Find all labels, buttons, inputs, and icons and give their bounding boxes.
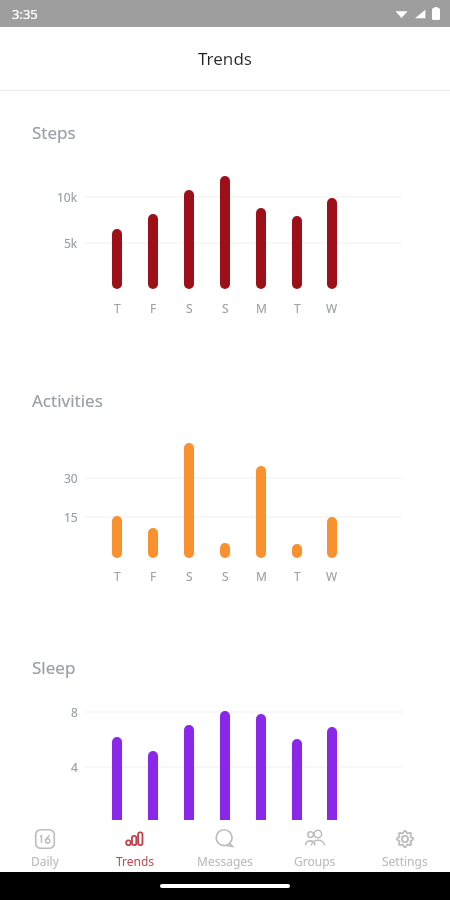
staticText: 5k xyxy=(64,235,78,251)
button[interactable]: Groups xyxy=(270,824,360,869)
staticText: Steps xyxy=(32,121,76,144)
staticText: Settings xyxy=(382,853,428,869)
staticText: Messages xyxy=(197,853,253,869)
staticText: 8 xyxy=(71,704,78,720)
staticText: S xyxy=(186,568,193,584)
staticText: Groups xyxy=(294,853,336,869)
staticText: F xyxy=(150,300,157,316)
staticText: 15 xyxy=(64,509,78,525)
button[interactable]: Messages xyxy=(180,824,270,869)
staticText: Activities xyxy=(32,389,103,412)
staticText: S xyxy=(222,568,229,584)
button[interactable]: Trends xyxy=(90,824,180,869)
staticText: 3:35 xyxy=(12,5,38,23)
staticText: 30 xyxy=(64,470,78,486)
button[interactable]: Daily xyxy=(0,824,90,869)
staticText: Sleep xyxy=(32,656,76,679)
staticText: F xyxy=(150,568,157,584)
staticText: 10k xyxy=(57,189,78,205)
staticText: T xyxy=(294,568,301,584)
staticText: 4 xyxy=(71,759,78,775)
staticText: Trends xyxy=(198,47,252,70)
button[interactable]: Settings xyxy=(360,824,450,869)
staticText: M xyxy=(256,568,267,584)
button[interactable]: Steps xyxy=(0,91,450,820)
staticText: Trends xyxy=(116,853,155,869)
staticText: Daily xyxy=(31,853,59,869)
staticText: M xyxy=(256,300,267,316)
staticText: S xyxy=(186,300,193,316)
staticText: T xyxy=(294,300,301,316)
staticText: T xyxy=(114,300,121,316)
staticText: W xyxy=(326,568,338,584)
staticText: S xyxy=(222,300,229,316)
staticText: T xyxy=(114,568,121,584)
staticText: W xyxy=(326,300,338,316)
